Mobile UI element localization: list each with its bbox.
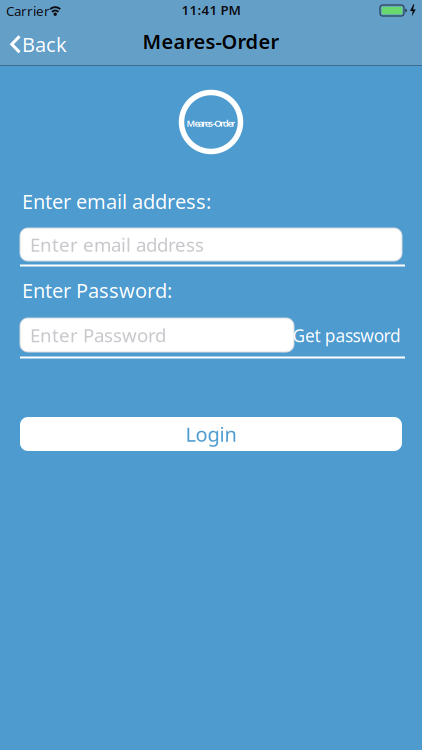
- staticText: Meares-Order: [142, 28, 279, 55]
- staticText: Get password: [292, 324, 401, 347]
- staticText: Enter email address:: [22, 188, 211, 215]
- button[interactable]: Get password: [292, 318, 422, 353]
- button[interactable]: Back: [0, 23, 67, 66]
- staticText: Meares-Order: [187, 117, 235, 129]
- staticText: Login: [185, 421, 236, 447]
- staticText: Enter Password:: [22, 277, 172, 304]
- staticText: Enter email address: [30, 232, 204, 257]
- staticText: Carrier: [6, 2, 50, 20]
- staticText: 11:41 PM: [181, 1, 240, 19]
- staticText: Enter Password: [30, 323, 166, 347]
- button[interactable]: Login: [20, 417, 402, 451]
- staticText: Back: [22, 31, 67, 58]
